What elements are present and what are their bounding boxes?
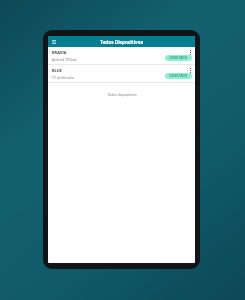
button[interactable]: More options bbox=[187, 67, 193, 73]
staticText: Android TV/Sala bbox=[52, 57, 77, 61]
staticText: Todos dispositivos bbox=[107, 92, 137, 97]
staticText: TV da Entrada bbox=[52, 75, 74, 79]
button[interactable]: CONECTADO bbox=[165, 73, 192, 79]
staticText: Todos Dispositivos bbox=[100, 39, 143, 45]
button[interactable]: CONECTADO bbox=[165, 55, 192, 61]
button[interactable]: BRAVIA bbox=[48, 47, 195, 64]
button[interactable]: More options bbox=[187, 49, 193, 55]
staticText: BLUE bbox=[52, 68, 62, 73]
button[interactable]: Open navigation menu bbox=[50, 38, 58, 46]
staticText: BRAVIA bbox=[52, 50, 67, 55]
staticText: CONECTADO bbox=[169, 74, 188, 78]
staticText: CONECTADO bbox=[169, 56, 188, 60]
button[interactable]: BLUE bbox=[48, 65, 195, 82]
